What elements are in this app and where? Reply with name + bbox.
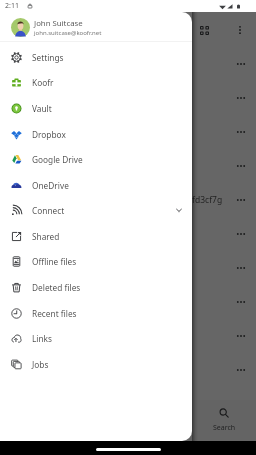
button[interactable]: Jobs bbox=[0, 351, 192, 377]
staticText: Jobs bbox=[32, 359, 49, 370]
button[interactable]: OneDrive bbox=[0, 172, 192, 198]
button[interactable]: Vault bbox=[0, 95, 192, 121]
button[interactable] bbox=[0, 217, 256, 251]
button[interactable] bbox=[0, 353, 256, 387]
staticText: Recent files bbox=[32, 308, 77, 319]
button[interactable] bbox=[0, 319, 256, 353]
button[interactable] bbox=[0, 149, 256, 183]
staticText: john.suitcase@koofr.net bbox=[34, 29, 102, 37]
button[interactable] bbox=[128, 400, 192, 441]
button[interactable]: Search bbox=[192, 400, 256, 441]
button[interactable]: More options bbox=[226, 16, 254, 44]
button[interactable]: Koofr bbox=[0, 69, 192, 95]
button[interactable]: Grid view bbox=[190, 16, 218, 44]
staticText: Koofr bbox=[32, 77, 54, 88]
staticText: OneDrive bbox=[32, 180, 69, 191]
staticText: 2:11 bbox=[5, 1, 19, 11]
staticText: Connect bbox=[32, 205, 65, 216]
button[interactable]: Deleted files bbox=[0, 274, 192, 300]
button[interactable]: Offline files bbox=[0, 248, 192, 274]
button[interactable]: Dropbox bbox=[0, 121, 192, 147]
staticText: John Suitcase bbox=[34, 18, 83, 29]
button[interactable]: Connect bbox=[0, 197, 192, 223]
button[interactable]: Links bbox=[0, 325, 192, 351]
button[interactable]: Recent files bbox=[0, 300, 192, 326]
staticText: Links bbox=[32, 333, 53, 344]
staticText: Search bbox=[213, 423, 236, 433]
staticText: Dropbox bbox=[32, 129, 66, 140]
staticText: Shared bbox=[32, 231, 60, 242]
button[interactable]: Google Drive bbox=[0, 146, 192, 172]
button[interactable]: Settings bbox=[0, 44, 192, 70]
staticText: Deleted files bbox=[32, 282, 81, 293]
button[interactable]: Screenshot_20230421_161204fd3cf7g bbox=[0, 183, 256, 217]
button[interactable] bbox=[0, 285, 256, 319]
button[interactable] bbox=[0, 81, 256, 115]
staticText: Offline files bbox=[32, 256, 77, 267]
button[interactable]: John Suitcase bbox=[0, 13, 192, 42]
button[interactable] bbox=[0, 251, 256, 285]
button[interactable]: Shared bbox=[0, 223, 192, 249]
staticText: Vault bbox=[32, 103, 52, 114]
staticText: Screenshot_20230421_161204fd3cf7g bbox=[72, 194, 223, 206]
staticText: Settings bbox=[32, 52, 64, 63]
button[interactable] bbox=[0, 47, 256, 81]
staticText: Google Drive bbox=[32, 154, 83, 165]
button[interactable] bbox=[0, 115, 256, 149]
